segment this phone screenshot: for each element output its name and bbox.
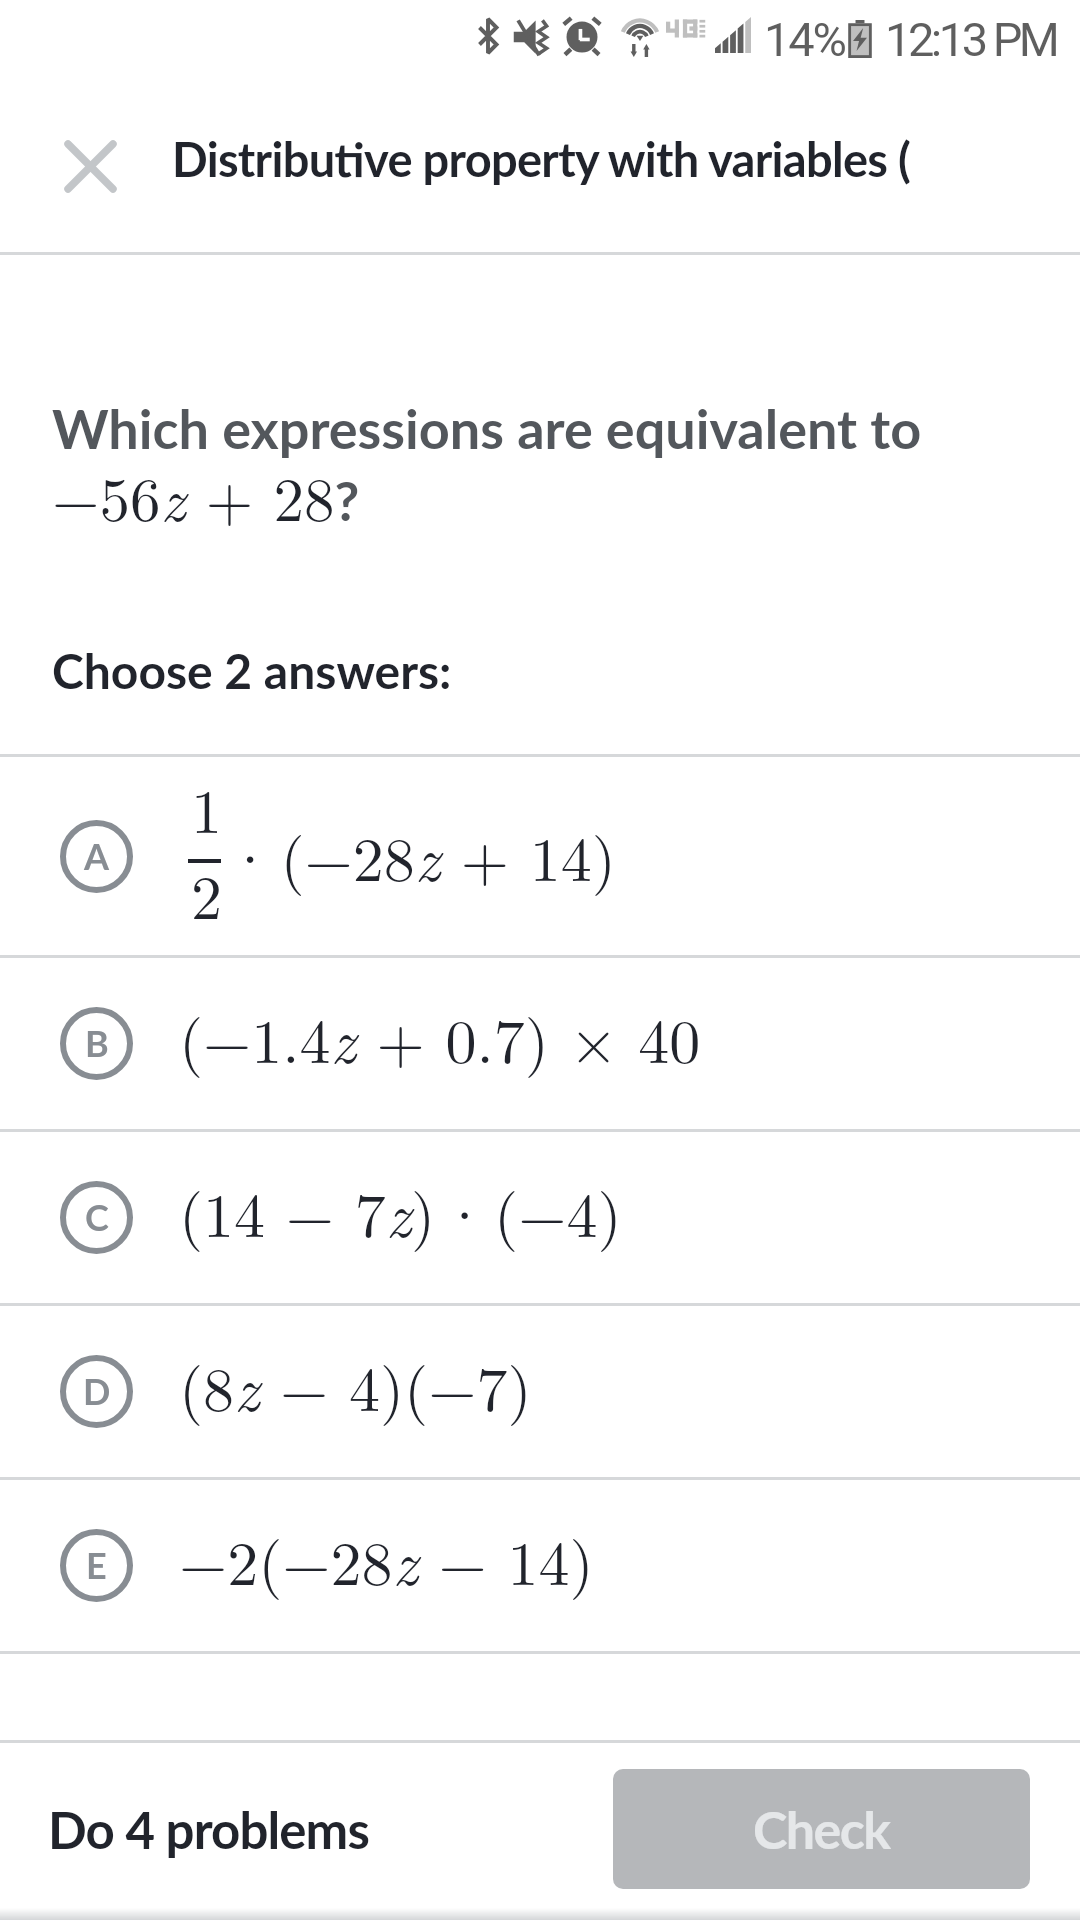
- staticText: C: [85, 1195, 109, 1238]
- button[interactable]: E: [0, 1480, 1080, 1651]
- staticText: A: [84, 834, 110, 877]
- button[interactable]: C: [0, 1132, 1080, 1303]
- staticText: · (−28z + 14): [226, 811, 616, 899]
- button[interactable]: D: [0, 1306, 1080, 1477]
- staticText: 1: [191, 763, 223, 851]
- staticText: −2(−28z − 14): [179, 1515, 594, 1603]
- staticText: Which expressions are equivalent to −56z…: [52, 396, 922, 539]
- button[interactable]: Close: [20, 96, 160, 236]
- staticText: Choose 2 answers:: [52, 642, 452, 700]
- button[interactable]: Check: [613, 1769, 1030, 1889]
- staticText: 14%: [764, 12, 845, 67]
- staticText: Distributive property with variables (ne…: [172, 131, 910, 187]
- staticText: Check: [753, 1798, 890, 1860]
- staticText: E: [86, 1543, 107, 1586]
- staticText: (8z − 4)(−7): [179, 1341, 532, 1429]
- button[interactable]: A: [0, 757, 1080, 955]
- staticText: 2: [191, 849, 223, 937]
- staticText: D: [83, 1369, 111, 1412]
- staticText: (14 − 7z) · (−4): [179, 1167, 622, 1255]
- staticText: (−1.4z + 0.7) × 40: [179, 993, 701, 1081]
- staticText: 12:13 PM: [885, 12, 1057, 67]
- staticText: Do 4 problems: [48, 1799, 369, 1860]
- button[interactable]: B: [0, 958, 1080, 1129]
- staticText: B: [85, 1021, 109, 1064]
- button[interactable]: Do 4 problems: [48, 1799, 369, 1860]
